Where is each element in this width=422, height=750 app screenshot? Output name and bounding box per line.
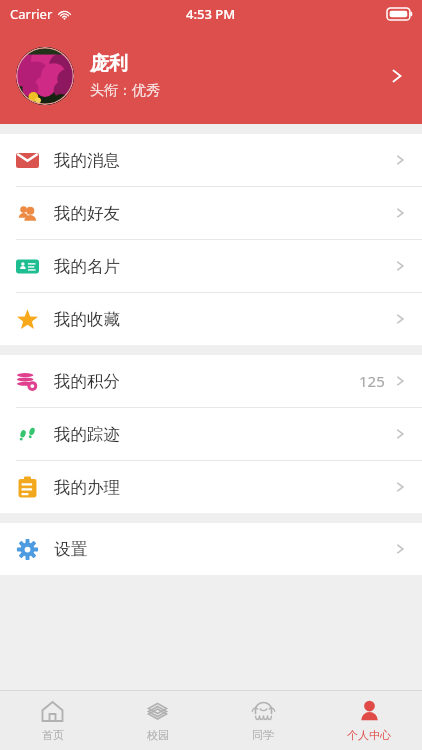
staticText: 我的积分 — [54, 371, 120, 392]
staticText: 个人中心 — [347, 728, 391, 742]
staticText: 我的好友 — [54, 203, 120, 224]
staticText: 4:53 PM — [186, 5, 236, 23]
button[interactable]: 同学 — [210, 691, 316, 750]
staticText: 同学 — [252, 728, 274, 742]
button[interactable]: 我的踪迹 — [0, 408, 422, 460]
staticText: 我的办理 — [54, 477, 120, 498]
staticText: 首页 — [42, 728, 64, 742]
button[interactable]: 庞利 — [0, 28, 422, 124]
button[interactable]: 我的名片 — [0, 240, 422, 292]
staticText: 我的名片 — [54, 256, 120, 277]
button[interactable]: 设置 — [0, 523, 422, 575]
button[interactable]: 我的办理 — [0, 461, 422, 513]
staticText: 庞利 — [90, 52, 128, 76]
staticText: 125 — [359, 371, 385, 391]
staticText: 校园 — [147, 728, 169, 742]
button[interactable]: 校园 — [105, 691, 210, 750]
staticText: 我的收藏 — [54, 309, 120, 330]
staticText: Carrier — [10, 5, 53, 23]
button[interactable]: 我的收藏 — [0, 293, 422, 345]
button[interactable]: 我的积分 — [0, 355, 422, 407]
button[interactable]: 我的好友 — [0, 187, 422, 239]
staticText: 我的消息 — [54, 150, 120, 171]
button[interactable]: 首页 — [0, 691, 105, 750]
staticText: 我的踪迹 — [54, 424, 120, 445]
button[interactable]: 个人中心 — [316, 691, 422, 750]
other: Profile detail — [386, 65, 408, 87]
staticText: 设置 — [54, 539, 87, 560]
button[interactable]: 我的消息 — [0, 134, 422, 186]
staticText: 头衔：优秀 — [90, 82, 160, 100]
